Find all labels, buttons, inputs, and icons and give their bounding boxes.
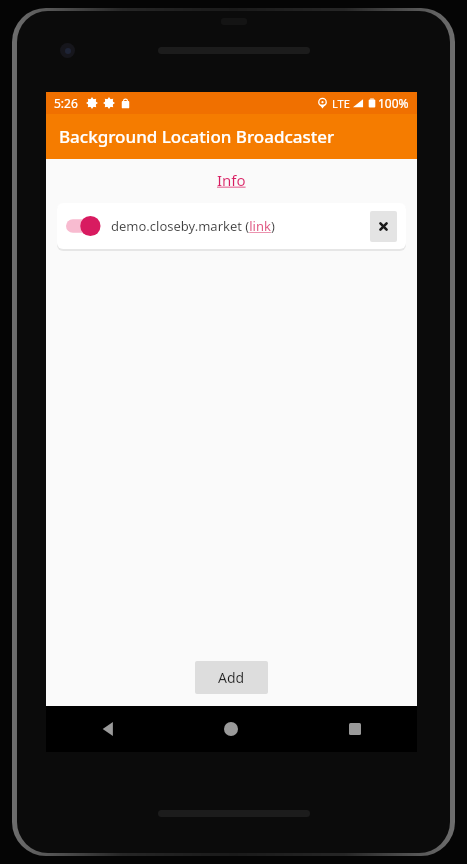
staticText: Info xyxy=(217,170,246,190)
button[interactable]: Remove host xyxy=(370,211,397,242)
staticText: 100% xyxy=(378,95,409,111)
button[interactable]: demo.closeby.market (link) xyxy=(57,203,406,249)
button[interactable]: Info xyxy=(217,170,246,190)
button[interactable]: Add xyxy=(195,661,268,694)
staticText: Background Location Broadcaster xyxy=(59,125,335,148)
staticText: 5:26 xyxy=(54,95,78,111)
staticText: LTE xyxy=(332,96,350,111)
button[interactable]: Recents xyxy=(293,706,417,752)
staticText: Add xyxy=(218,668,245,687)
staticText: demo.closeby.market (link) xyxy=(111,217,275,235)
button[interactable] xyxy=(66,215,100,237)
button[interactable]: Back xyxy=(46,706,169,752)
button[interactable]: Home xyxy=(169,706,293,752)
